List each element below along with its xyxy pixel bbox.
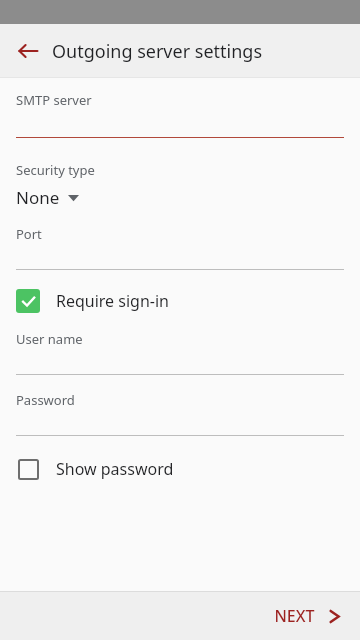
- staticText: SMTP server: [16, 91, 92, 109]
- button[interactable]: None: [16, 186, 344, 209]
- staticText: Require sign-in: [56, 290, 169, 312]
- staticText: Port: [16, 225, 42, 243]
- staticText: Outgoing server settings: [52, 39, 263, 64]
- button[interactable]: Require sign-in: [0, 285, 360, 317]
- staticText: None: [16, 186, 60, 209]
- staticText: NEXT: [274, 605, 315, 627]
- staticText: User name: [16, 330, 83, 348]
- button[interactable]: Show password: [0, 453, 360, 485]
- button[interactable]: Back: [8, 31, 48, 71]
- staticText: Show password: [56, 458, 174, 480]
- staticText: Security type: [16, 161, 95, 179]
- staticText: Password: [16, 391, 75, 409]
- button[interactable]: NEXT: [254, 597, 360, 635]
